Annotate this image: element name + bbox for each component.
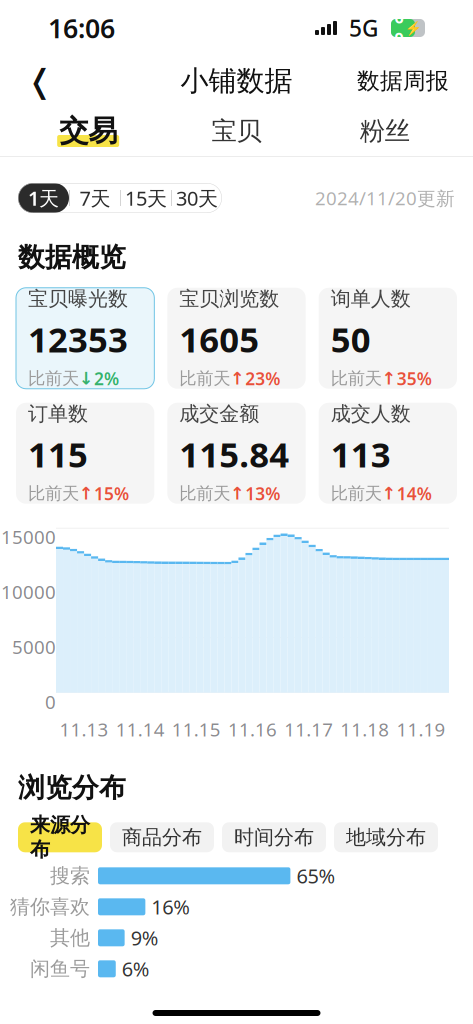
staticText: ↓ — [79, 369, 94, 388]
staticText: 宝贝曝光数 — [28, 286, 128, 311]
staticText: ❬ — [26, 63, 53, 99]
button[interactable]: 宝贝 — [162, 106, 311, 156]
staticText: 69 — [394, 7, 403, 49]
staticText: 15% — [94, 482, 129, 505]
staticText: 14% — [397, 482, 432, 505]
staticText: 小铺数据 — [180, 64, 292, 98]
staticText: 7天 — [79, 185, 110, 211]
button[interactable]: 粉丝 — [311, 106, 459, 156]
staticText: ↑ — [382, 369, 397, 388]
staticText: 数据概览 — [18, 241, 126, 274]
staticText: ↑ — [230, 484, 245, 503]
staticText: 时间分布 — [234, 825, 314, 850]
staticText: 13% — [245, 482, 280, 505]
staticText: 比前天 — [331, 483, 382, 504]
staticText: 16% — [151, 893, 190, 920]
staticText: 比前天 — [28, 368, 79, 389]
button[interactable]: 来源分布 — [18, 822, 102, 852]
staticText: 地域分布 — [346, 825, 426, 850]
staticText: 10000 — [1, 579, 56, 604]
staticText: 0 — [45, 689, 56, 714]
staticText: 比前天 — [331, 368, 382, 389]
staticText: 数据周报 — [357, 67, 449, 95]
staticText: 11.18 — [340, 717, 389, 742]
staticText: 其他 — [50, 925, 90, 950]
staticText: 1天 — [28, 185, 59, 211]
button[interactable]: 时间分布 — [222, 822, 326, 852]
staticText: 11.14 — [116, 717, 165, 742]
staticText: 9% — [131, 924, 159, 951]
staticText: 115.84 — [179, 431, 289, 477]
staticText: ↑ — [230, 369, 245, 388]
staticText: 宝贝浏览数 — [179, 286, 279, 311]
staticText: 订单数 — [28, 401, 88, 426]
staticText: 50 — [331, 316, 371, 362]
staticText: 11.17 — [284, 717, 333, 742]
staticText: 浏览分布 — [18, 771, 126, 804]
staticText: 5G — [349, 13, 378, 43]
staticText: 来源分布 — [30, 813, 90, 862]
button[interactable]: 7天 — [69, 183, 120, 213]
staticText: 11.15 — [172, 717, 221, 742]
staticText: 比前天 — [28, 483, 79, 504]
staticText: 12353 — [28, 316, 128, 362]
staticText: 113 — [331, 431, 391, 477]
staticText: 交易 — [59, 113, 117, 149]
staticText: 成交金额 — [179, 401, 259, 426]
staticText: 成交人数 — [331, 401, 411, 426]
staticText: 询单人数 — [331, 286, 411, 311]
staticText: 5000 — [12, 634, 56, 659]
staticText: 猜你喜欢 — [10, 894, 90, 919]
staticText: 30天 — [176, 185, 218, 211]
button[interactable]: 15天 — [120, 183, 171, 213]
staticText: 65% — [296, 862, 335, 889]
staticText: 宝贝 — [211, 115, 261, 146]
staticText: 2024/11/20更新 — [315, 186, 455, 210]
staticText: 1605 — [179, 316, 259, 362]
staticText: 16:06 — [48, 10, 115, 46]
staticText: ↑ — [382, 484, 397, 503]
staticText: 搜索 — [50, 863, 90, 888]
button[interactable]: 交易 — [14, 106, 162, 156]
staticText: 闲鱼号 — [30, 956, 90, 981]
staticText: 比前天 — [179, 483, 230, 504]
staticText: 11.19 — [396, 717, 445, 742]
staticText: 粉丝 — [360, 115, 410, 146]
staticText: 商品分布 — [122, 825, 202, 850]
button[interactable]: 地域分布 — [334, 822, 438, 852]
staticText: 35% — [397, 367, 432, 390]
button[interactable]: 30天 — [171, 183, 222, 213]
button[interactable]: 1天 — [18, 183, 69, 213]
button[interactable]: 返回 — [18, 59, 62, 103]
staticText: 11.16 — [228, 717, 277, 742]
staticText: 比前天 — [179, 368, 230, 389]
staticText: 23% — [245, 367, 280, 390]
button[interactable]: 数据周报 — [351, 59, 455, 103]
staticText: 15000 — [1, 524, 56, 549]
button[interactable]: 商品分布 — [110, 822, 214, 852]
staticText: 11.13 — [60, 717, 109, 742]
staticText: ↑ — [79, 484, 94, 503]
staticText: 115 — [28, 431, 88, 477]
staticText: ⚡ — [404, 20, 421, 36]
staticText: 15天 — [125, 185, 167, 211]
staticText: 2% — [94, 367, 119, 390]
staticText: 6% — [122, 955, 150, 982]
